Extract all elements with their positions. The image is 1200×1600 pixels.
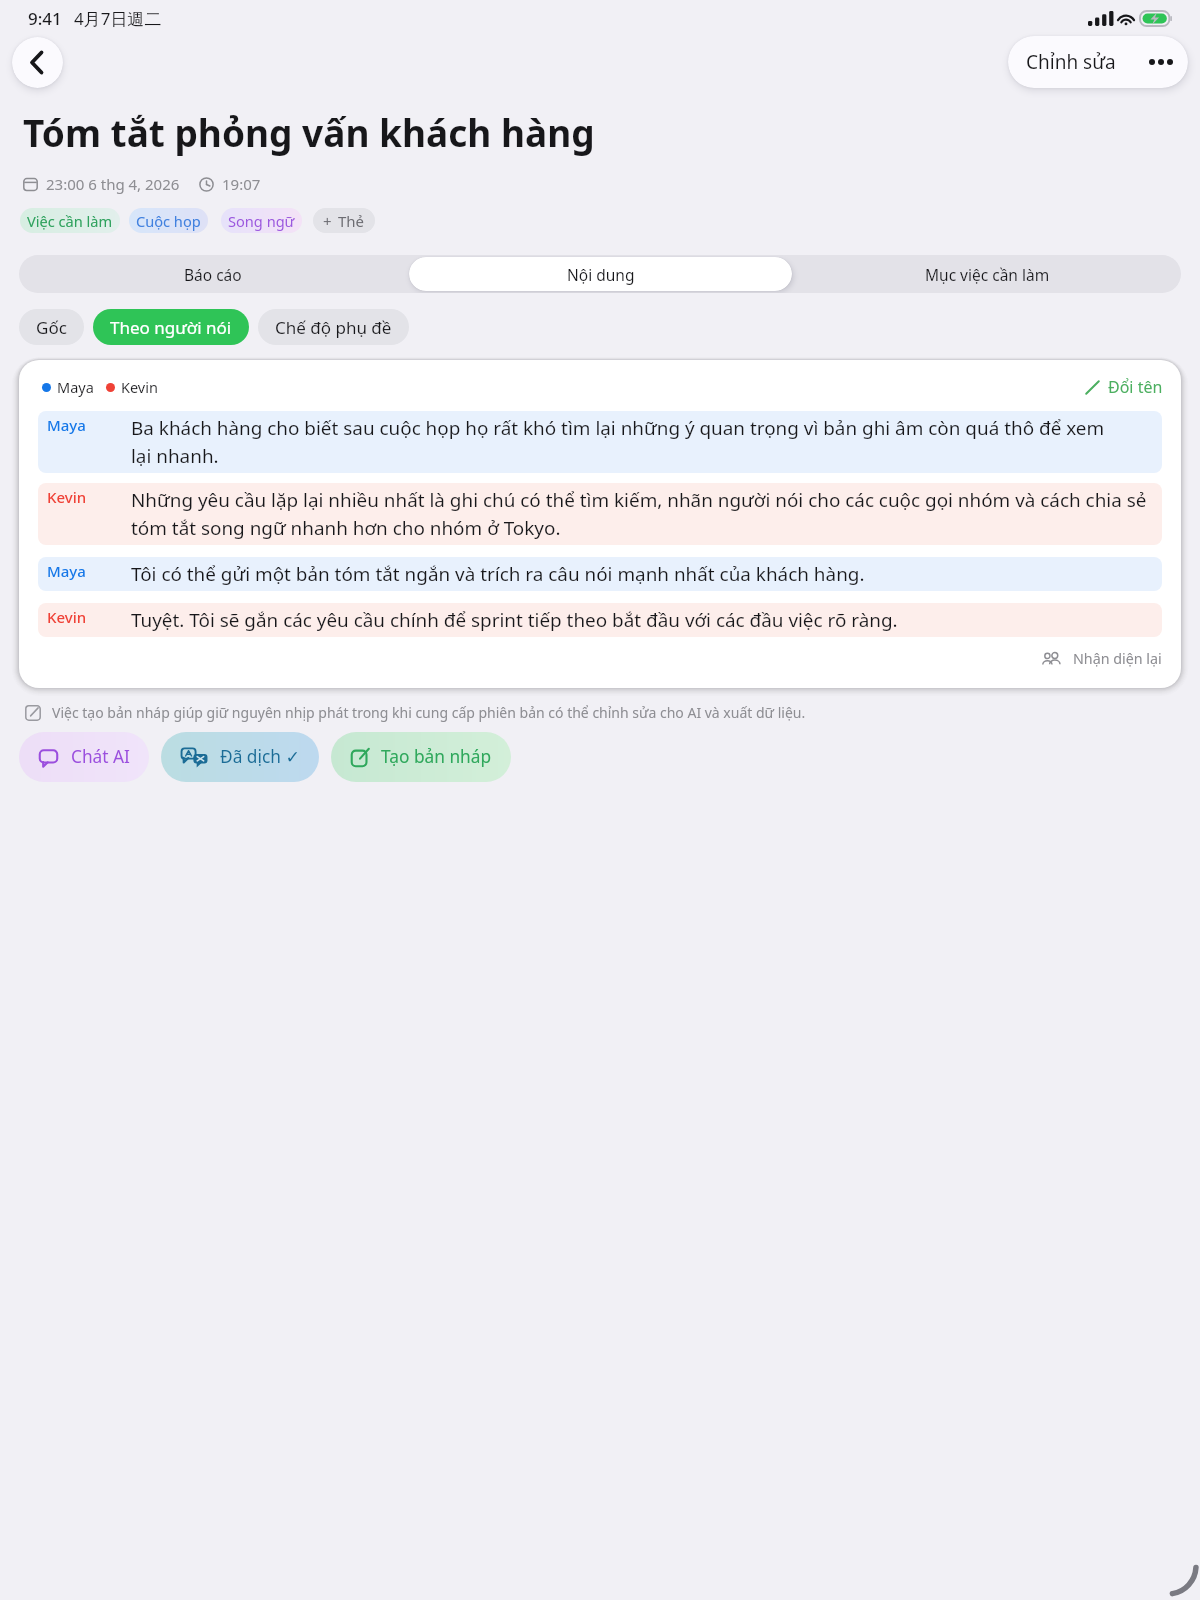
staticText: Đổi tên <box>1108 376 1163 398</box>
staticText: Maya <box>57 377 94 397</box>
button[interactable]: Back <box>12 37 63 88</box>
button[interactable]: Kevin <box>38 603 1162 637</box>
staticText: Kevin <box>47 607 131 627</box>
button[interactable]: Nội dung <box>409 257 792 291</box>
staticText: Chỉnh sửa <box>1026 49 1116 75</box>
staticText: Đã dịch ✓ <box>220 745 300 769</box>
staticText: Nhận diện lại <box>1073 649 1162 668</box>
button[interactable]: Mục việc cần làm <box>796 257 1179 291</box>
staticText: Mục việc cần làm <box>925 264 1050 285</box>
staticText: Maya <box>47 415 131 435</box>
button[interactable]: Đổi tên <box>1085 376 1163 398</box>
button[interactable]: Maya <box>38 411 1162 473</box>
staticText: Theo người nói <box>110 316 232 339</box>
button[interactable]: Báo cáo <box>21 257 405 291</box>
staticText: 9:41 <box>28 7 62 30</box>
staticText: Kevin <box>121 377 158 397</box>
button[interactable]: Tạo bản nháp <box>331 732 511 782</box>
button[interactable]: Gốc <box>19 309 84 345</box>
staticText: Việc cần làm <box>27 211 113 231</box>
staticText: 4月7日週二 <box>74 7 162 30</box>
button[interactable]: Theo người nói <box>93 309 249 345</box>
button[interactable]: Chỉnh sửa <box>1008 36 1188 88</box>
staticText: Tuyệt. Tôi sẽ gắn các yêu cầu chính để s… <box>131 607 898 633</box>
button[interactable]: Việc cần làm <box>20 208 120 233</box>
staticText: Gốc <box>36 316 67 339</box>
staticText: Ba khách hàng cho biết sau cuộc họp họ r… <box>131 415 1105 469</box>
staticText: Việc tạo bản nháp giúp giữ nguyên nhịp p… <box>52 703 806 722</box>
staticText: Báo cáo <box>184 264 242 285</box>
button[interactable]: Song ngữ <box>221 208 302 233</box>
staticText: Maya <box>47 561 131 581</box>
staticText: Chát AI <box>71 745 130 769</box>
staticText: Chế độ phụ đề <box>275 316 392 339</box>
staticText: Nội dung <box>567 264 635 285</box>
button[interactable]: + <box>313 208 375 233</box>
staticText: Song ngữ <box>228 211 295 231</box>
staticText: Cuộc họp <box>136 211 201 231</box>
staticText: 23:00 6 thg 4, 2026 <box>46 174 180 194</box>
button[interactable]: Đã dịch ✓ <box>161 732 319 782</box>
button[interactable]: Chế độ phụ đề <box>258 309 409 345</box>
staticText: Tôi có thể gửi một bản tóm tắt ngắn và t… <box>131 561 865 587</box>
staticText: Kevin <box>47 487 131 507</box>
staticText: Thẻ <box>338 211 365 231</box>
staticText: 19:07 <box>222 174 261 194</box>
staticText: Những yêu cầu lặp lại nhiều nhất là ghi … <box>131 487 1147 541</box>
staticText: Tạo bản nháp <box>381 745 492 769</box>
button[interactable]: Cuộc họp <box>129 208 208 233</box>
staticText: Tóm tắt phỏng vấn khách hàng <box>23 107 595 157</box>
button[interactable]: Nhận diện lại <box>1042 649 1162 668</box>
button[interactable]: Kevin <box>38 483 1162 545</box>
button[interactable]: Chát AI <box>19 732 149 782</box>
button[interactable]: Maya <box>38 557 1162 591</box>
staticText: + <box>323 211 332 231</box>
